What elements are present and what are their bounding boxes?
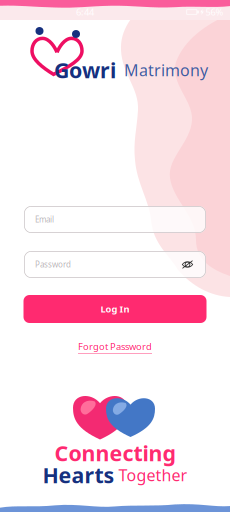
staticText: Forgot Password xyxy=(78,340,152,353)
staticText: Connecting xyxy=(54,439,175,467)
staticText: Password xyxy=(35,259,71,270)
staticText: Log In xyxy=(100,303,129,315)
button[interactable]: Log In xyxy=(23,295,206,323)
staticText: 6:44 xyxy=(76,6,94,18)
button[interactable]: Show password xyxy=(180,258,195,270)
staticText: Hearts xyxy=(42,461,114,489)
staticText: Together xyxy=(118,464,187,486)
button[interactable]: Forgot Password xyxy=(75,337,155,357)
staticText: Email xyxy=(35,214,54,225)
staticText: Gowri xyxy=(54,56,116,84)
staticText: Matrimony xyxy=(116,59,208,81)
staticText: 56% xyxy=(205,6,223,18)
